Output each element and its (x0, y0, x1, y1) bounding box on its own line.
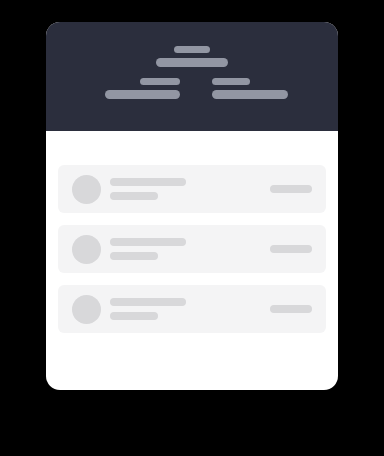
button[interactable] (58, 165, 326, 213)
other: Title placeholder (156, 46, 228, 67)
button[interactable] (58, 225, 326, 273)
button[interactable] (58, 285, 326, 333)
